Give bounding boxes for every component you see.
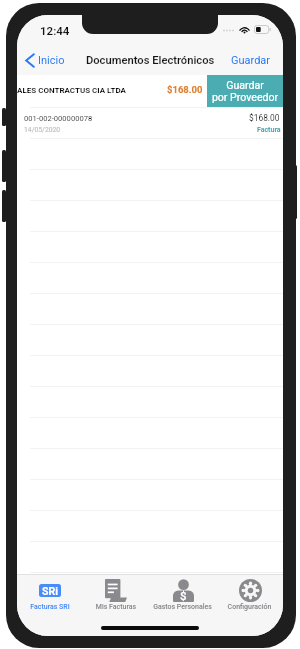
staticText: 12:44 <box>40 24 70 37</box>
button[interactable]: Facturas SRI <box>17 574 83 611</box>
staticText: $168.00 <box>167 84 203 95</box>
staticText: Guardar por Proveedor <box>207 79 283 104</box>
other: Gastos Personales <box>173 579 194 602</box>
staticText: Gastos Personales <box>149 603 216 611</box>
other: Facturas SRI <box>39 584 61 597</box>
button[interactable]: Guardar por Proveedor <box>207 75 283 107</box>
staticText: 14/05/2020 <box>24 126 61 134</box>
staticText: Facturas SRI <box>17 603 83 611</box>
button[interactable]: COMERCIALES CONTRACTUS CIA LTDA <box>17 75 283 107</box>
staticText: Mis Facturas <box>83 603 149 611</box>
staticText: SRi <box>42 585 58 597</box>
other: Mis Facturas <box>105 579 127 602</box>
staticText: 001-002-000000078 <box>24 114 93 123</box>
button[interactable]: Gastos Personales <box>149 574 216 611</box>
staticText: $ <box>180 589 187 602</box>
staticText: Guardar <box>231 54 271 67</box>
button[interactable]: 001-002-000000078 <box>17 108 283 138</box>
staticText: Factura <box>257 126 281 134</box>
button[interactable]: Inicio <box>17 49 73 72</box>
button[interactable]: Configuración <box>216 574 283 611</box>
button[interactable]: Guardar <box>223 50 283 71</box>
staticText: Documentos Electrónicos <box>86 54 215 67</box>
staticText: Configuración <box>216 603 283 611</box>
button[interactable]: Mis Facturas <box>83 574 149 611</box>
staticText: Inicio <box>38 54 65 67</box>
other: Configuración <box>239 579 262 602</box>
staticText: COMERCIALES CONTRACTUS CIA LTDA <box>17 86 126 95</box>
staticText: $168.00 <box>249 113 280 123</box>
